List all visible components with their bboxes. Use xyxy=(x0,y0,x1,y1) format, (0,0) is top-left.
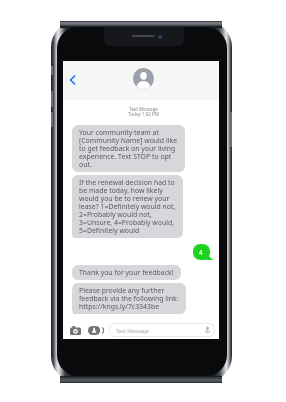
staticText: 3=Unsure, 4=Probably would, xyxy=(79,219,175,227)
button[interactable]: Thank you for your feedback! xyxy=(72,265,181,280)
staticText: Please provide any further xyxy=(79,287,165,295)
button[interactable]: Contact avatar xyxy=(133,68,154,89)
staticText: Text Message xyxy=(116,327,149,334)
button[interactable]: Text Message xyxy=(109,323,215,337)
staticText: Thank you for your feedback! xyxy=(79,269,174,277)
button[interactable]: Back xyxy=(67,73,81,87)
staticText: https://kngs.ly/7c3343be xyxy=(79,303,160,311)
staticText: Today 1:02 PM xyxy=(128,112,159,117)
staticText: feedback via the following link: xyxy=(79,295,179,303)
button[interactable]: Please provide any further xyxy=(72,283,186,314)
staticText: would you be to renew your xyxy=(79,195,170,203)
staticText: be made today, how likely xyxy=(79,187,163,195)
staticText: experience. Text STOP to opt xyxy=(79,153,172,161)
staticText: lease? 1=Definitely would not, xyxy=(79,203,176,211)
staticText: [Community Name] would like xyxy=(79,137,178,145)
staticText: If the renewal decision had to xyxy=(79,179,175,187)
staticText: Your community team at xyxy=(79,129,159,137)
staticText: 4 xyxy=(199,248,203,257)
staticText: out. xyxy=(79,161,92,169)
button[interactable]: If the renewal decision had to xyxy=(72,175,183,238)
button[interactable]: Apps xyxy=(88,326,102,335)
staticText: 5=Definitely would xyxy=(79,227,140,235)
staticText: 2=Probably would not, xyxy=(79,211,152,219)
button[interactable]: Your community team at xyxy=(72,125,185,172)
staticText: to get feedback on your living xyxy=(79,145,176,153)
staticText: Text Message xyxy=(129,107,158,112)
button[interactable]: Camera xyxy=(70,326,81,335)
button[interactable]: 4 xyxy=(193,244,214,260)
